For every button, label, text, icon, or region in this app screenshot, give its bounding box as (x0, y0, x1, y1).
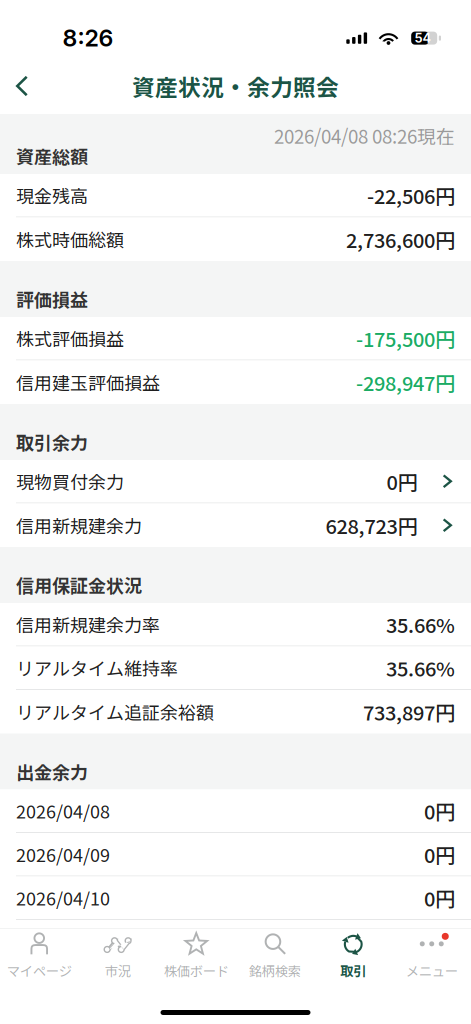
staticText: -175,500円 (356, 324, 455, 353)
staticText: 株価ボード (164, 961, 229, 980)
staticText: 信用新規建余力 (16, 512, 142, 538)
button[interactable]: マイページ (0, 928, 78, 982)
staticText: 資産総額 (16, 143, 88, 169)
staticText: 35.66% (386, 610, 455, 639)
staticText: 0円 (424, 840, 455, 869)
button[interactable]: 市況 (78, 928, 157, 982)
staticText: -298,947円 (356, 368, 455, 397)
button[interactable]: 取引 (314, 928, 392, 982)
staticText: 2,736,600円 (346, 225, 455, 254)
staticText: マイページ (7, 961, 72, 980)
staticText: 0円 (424, 796, 455, 825)
staticText: 銘柄検索 (249, 961, 301, 980)
staticText: -22,506円 (367, 181, 455, 210)
staticText: 2026/04/08 08:26現在 (274, 122, 455, 149)
staticText: 株式時価総額 (16, 226, 124, 252)
staticText: 資産状況・余力照会 (132, 70, 339, 102)
button[interactable]: 戻る (0, 64, 44, 108)
staticText: 現金残高 (16, 182, 88, 208)
staticText: 35.66% (386, 653, 455, 682)
staticText: 取引余力 (16, 429, 88, 455)
staticText: 2026/04/09 (16, 841, 110, 867)
button[interactable]: 銘柄検索 (235, 928, 314, 982)
staticText: 2026/04/10 (16, 885, 110, 911)
staticText: 0円 (424, 883, 455, 912)
staticText: 628,723円 (325, 511, 417, 540)
button[interactable]: 株価ボード (157, 928, 235, 982)
staticText: 0円 (386, 467, 417, 496)
staticText: 評価損益 (16, 286, 88, 312)
staticText: 市況 (105, 961, 131, 980)
staticText: 取引 (340, 961, 366, 980)
staticText: リアルタイム追証余裕額 (16, 699, 214, 725)
staticText: 出金余力 (16, 758, 88, 784)
button[interactable]: メニュー (392, 928, 471, 982)
staticText: リアルタイム維持率 (16, 655, 178, 681)
staticText: 信用建玉評価損益 (16, 369, 160, 395)
staticText: 信用保証金状況 (16, 572, 142, 598)
staticText: 信用新規建余力率 (16, 611, 160, 637)
staticText: 2026/04/08 (16, 798, 110, 824)
staticText: 現物買付余力 (16, 468, 124, 494)
staticText: メニュー (406, 961, 458, 980)
staticText: 733,897円 (363, 697, 455, 726)
staticText: 株式評価損益 (16, 325, 124, 351)
staticText: 8:26 (62, 24, 113, 52)
staticText: 54 (415, 30, 432, 46)
